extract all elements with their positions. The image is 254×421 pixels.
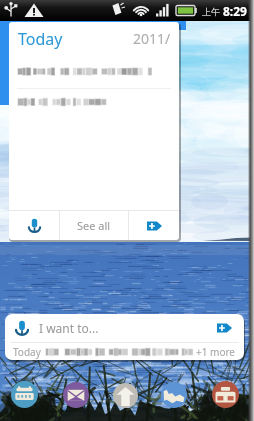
button[interactable]: Voice input — [9, 211, 59, 240]
button[interactable]: All apps — [113, 383, 138, 408]
staticText: I want to... — [39, 320, 99, 336]
button[interactable]: See all — [60, 211, 128, 240]
button[interactable]: Add — [129, 211, 179, 240]
staticText: 2011/ — [133, 29, 171, 48]
button[interactable]: Phone — [11, 381, 38, 408]
staticText: Today — [13, 345, 41, 359]
button[interactable]: Browser — [161, 382, 187, 408]
button[interactable]: Add note — [216, 322, 233, 334]
button[interactable]: Today — [5, 343, 244, 360]
staticText: See all — [77, 218, 111, 233]
staticText: +1 more — [196, 345, 236, 359]
button[interactable]: Apps — [212, 381, 239, 408]
button[interactable]: Today — [9, 22, 179, 240]
staticText: 上午 — [202, 6, 220, 17]
staticText: 8:29 — [223, 3, 247, 19]
button[interactable]: Messages — [63, 382, 89, 408]
button[interactable]: I want to... — [5, 314, 244, 342]
staticText: Today — [18, 28, 63, 50]
